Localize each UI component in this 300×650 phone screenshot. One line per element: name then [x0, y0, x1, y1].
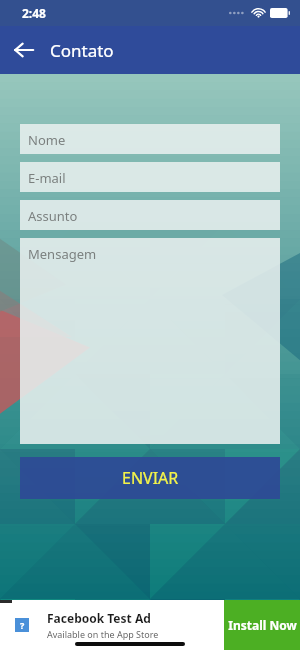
- staticText: ?: [20, 619, 25, 631]
- button[interactable]: ENVIAR: [20, 457, 280, 499]
- staticText: ENVIAR: [122, 467, 179, 489]
- button[interactable]: Mensagem: [20, 238, 280, 444]
- staticText: E-mail: [28, 169, 66, 187]
- staticText: Contato: [50, 39, 114, 62]
- staticText: Available on the App Store: [47, 628, 159, 640]
- button[interactable]: Assunto: [20, 200, 280, 230]
- button[interactable]: Install Now: [224, 600, 300, 650]
- staticText: Nome: [28, 131, 66, 149]
- staticText: Mensagem: [28, 245, 97, 263]
- staticText: Assunto: [28, 207, 78, 225]
- staticText: Install Now: [228, 617, 297, 633]
- button[interactable]: E-mail: [20, 162, 280, 192]
- staticText: 2:48: [22, 5, 46, 21]
- button[interactable]: Nome: [20, 124, 280, 154]
- staticText: Facebook Test Ad: [47, 610, 151, 626]
- button[interactable]: Back: [4, 30, 44, 70]
